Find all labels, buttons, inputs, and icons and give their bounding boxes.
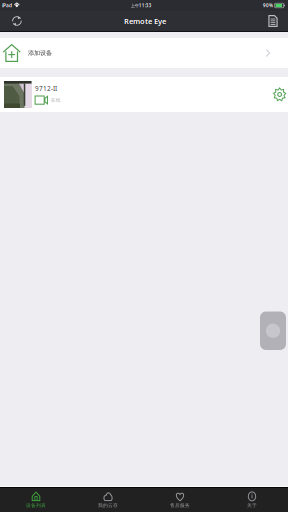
staticText: iPad [2,2,12,9]
staticText: 售后服务 [170,502,190,508]
button[interactable]: 设备列表 [0,488,72,512]
button[interactable]: Refresh [5,11,29,31]
staticText: 设备列表 [26,502,46,508]
staticText: 90% [263,2,273,9]
button[interactable]: AssistiveTouch [260,311,286,350]
button[interactable]: 添加设备 [0,38,288,68]
button[interactable]: 售后服务 [144,488,216,512]
staticText: 在线 [51,97,61,103]
button[interactable]: 我的云存 [72,488,144,512]
staticText: 上午11:33 [131,2,152,8]
staticText: 9712-II [35,84,57,93]
staticText: 关于 [247,502,257,508]
staticText: 添加设备 [28,49,52,57]
button[interactable]: Event log [261,11,285,31]
staticText: 我的云存 [98,502,118,508]
button[interactable]: 关于 [216,488,288,512]
staticText: Remote Eye [124,16,166,26]
button[interactable]: 9712-II [0,77,288,112]
